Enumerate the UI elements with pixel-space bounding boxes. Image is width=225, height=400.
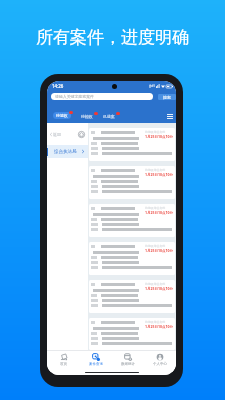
staticText: 待检收	[81, 114, 93, 119]
staticText: 综合执法局	[54, 149, 77, 155]
staticText: 待签收单位名称	[145, 168, 166, 172]
button[interactable]: 首页	[78, 131, 85, 138]
button[interactable]: 案件查询	[80, 351, 112, 372]
button[interactable]: 搜索	[158, 94, 176, 100]
staticText: 1月25日10点10分	[145, 210, 174, 215]
button[interactable]: 待签收	[53, 112, 71, 119]
staticText: 返回	[53, 132, 61, 137]
staticText: 待签收单位名称	[145, 320, 166, 324]
button[interactable]: 待签收单位名称	[89, 128, 175, 161]
staticText: 待签收单位名称	[145, 244, 166, 248]
staticText: 1月25日10点10分	[145, 172, 174, 177]
staticText: 已进案	[103, 114, 115, 119]
button[interactable]: 已进案	[100, 113, 118, 120]
button[interactable]: 综合执法局	[47, 145, 88, 158]
staticText: 14:26	[52, 83, 64, 89]
button[interactable]: 个人中心	[144, 351, 176, 372]
staticText: 数据统计	[121, 362, 135, 366]
staticText: 搜索	[163, 95, 171, 100]
staticText: 1月25日10点10分	[145, 324, 174, 329]
button[interactable]: 更多菜单	[166, 113, 173, 120]
button[interactable]: 返回	[50, 132, 61, 137]
button[interactable]: 首页	[47, 351, 80, 372]
staticText: 1月25日10点10分	[145, 134, 174, 139]
staticText: 案件查询	[89, 362, 103, 366]
staticText: 所有案件，进度明确	[36, 27, 189, 48]
staticText: 待签收单位名称	[145, 206, 166, 210]
staticText: 请输入关键字搜索案件	[55, 94, 94, 99]
button[interactable]: 待签收单位名称	[89, 318, 175, 350]
staticText: 待签收单位名称	[145, 130, 166, 134]
button[interactable]: 请输入关键字搜索案件	[51, 93, 153, 100]
staticText: 1月25日10点10分	[145, 286, 174, 291]
staticText: 首页	[60, 362, 67, 366]
button[interactable]: 待签收单位名称	[89, 242, 175, 275]
staticText: 待签收	[56, 113, 68, 118]
staticText: 待签收单位名称	[145, 282, 166, 286]
button[interactable]: 待签收单位名称	[89, 204, 175, 237]
staticText: 1月25日10点10分	[145, 248, 174, 253]
button[interactable]: 数据统计	[112, 351, 144, 372]
button[interactable]: 待签收单位名称	[89, 166, 175, 199]
staticText: 个人中心	[153, 362, 167, 366]
button[interactable]: 待签收单位名称	[89, 280, 175, 313]
button[interactable]: 待检收	[78, 113, 96, 120]
staticText: 步行	[149, 84, 155, 88]
